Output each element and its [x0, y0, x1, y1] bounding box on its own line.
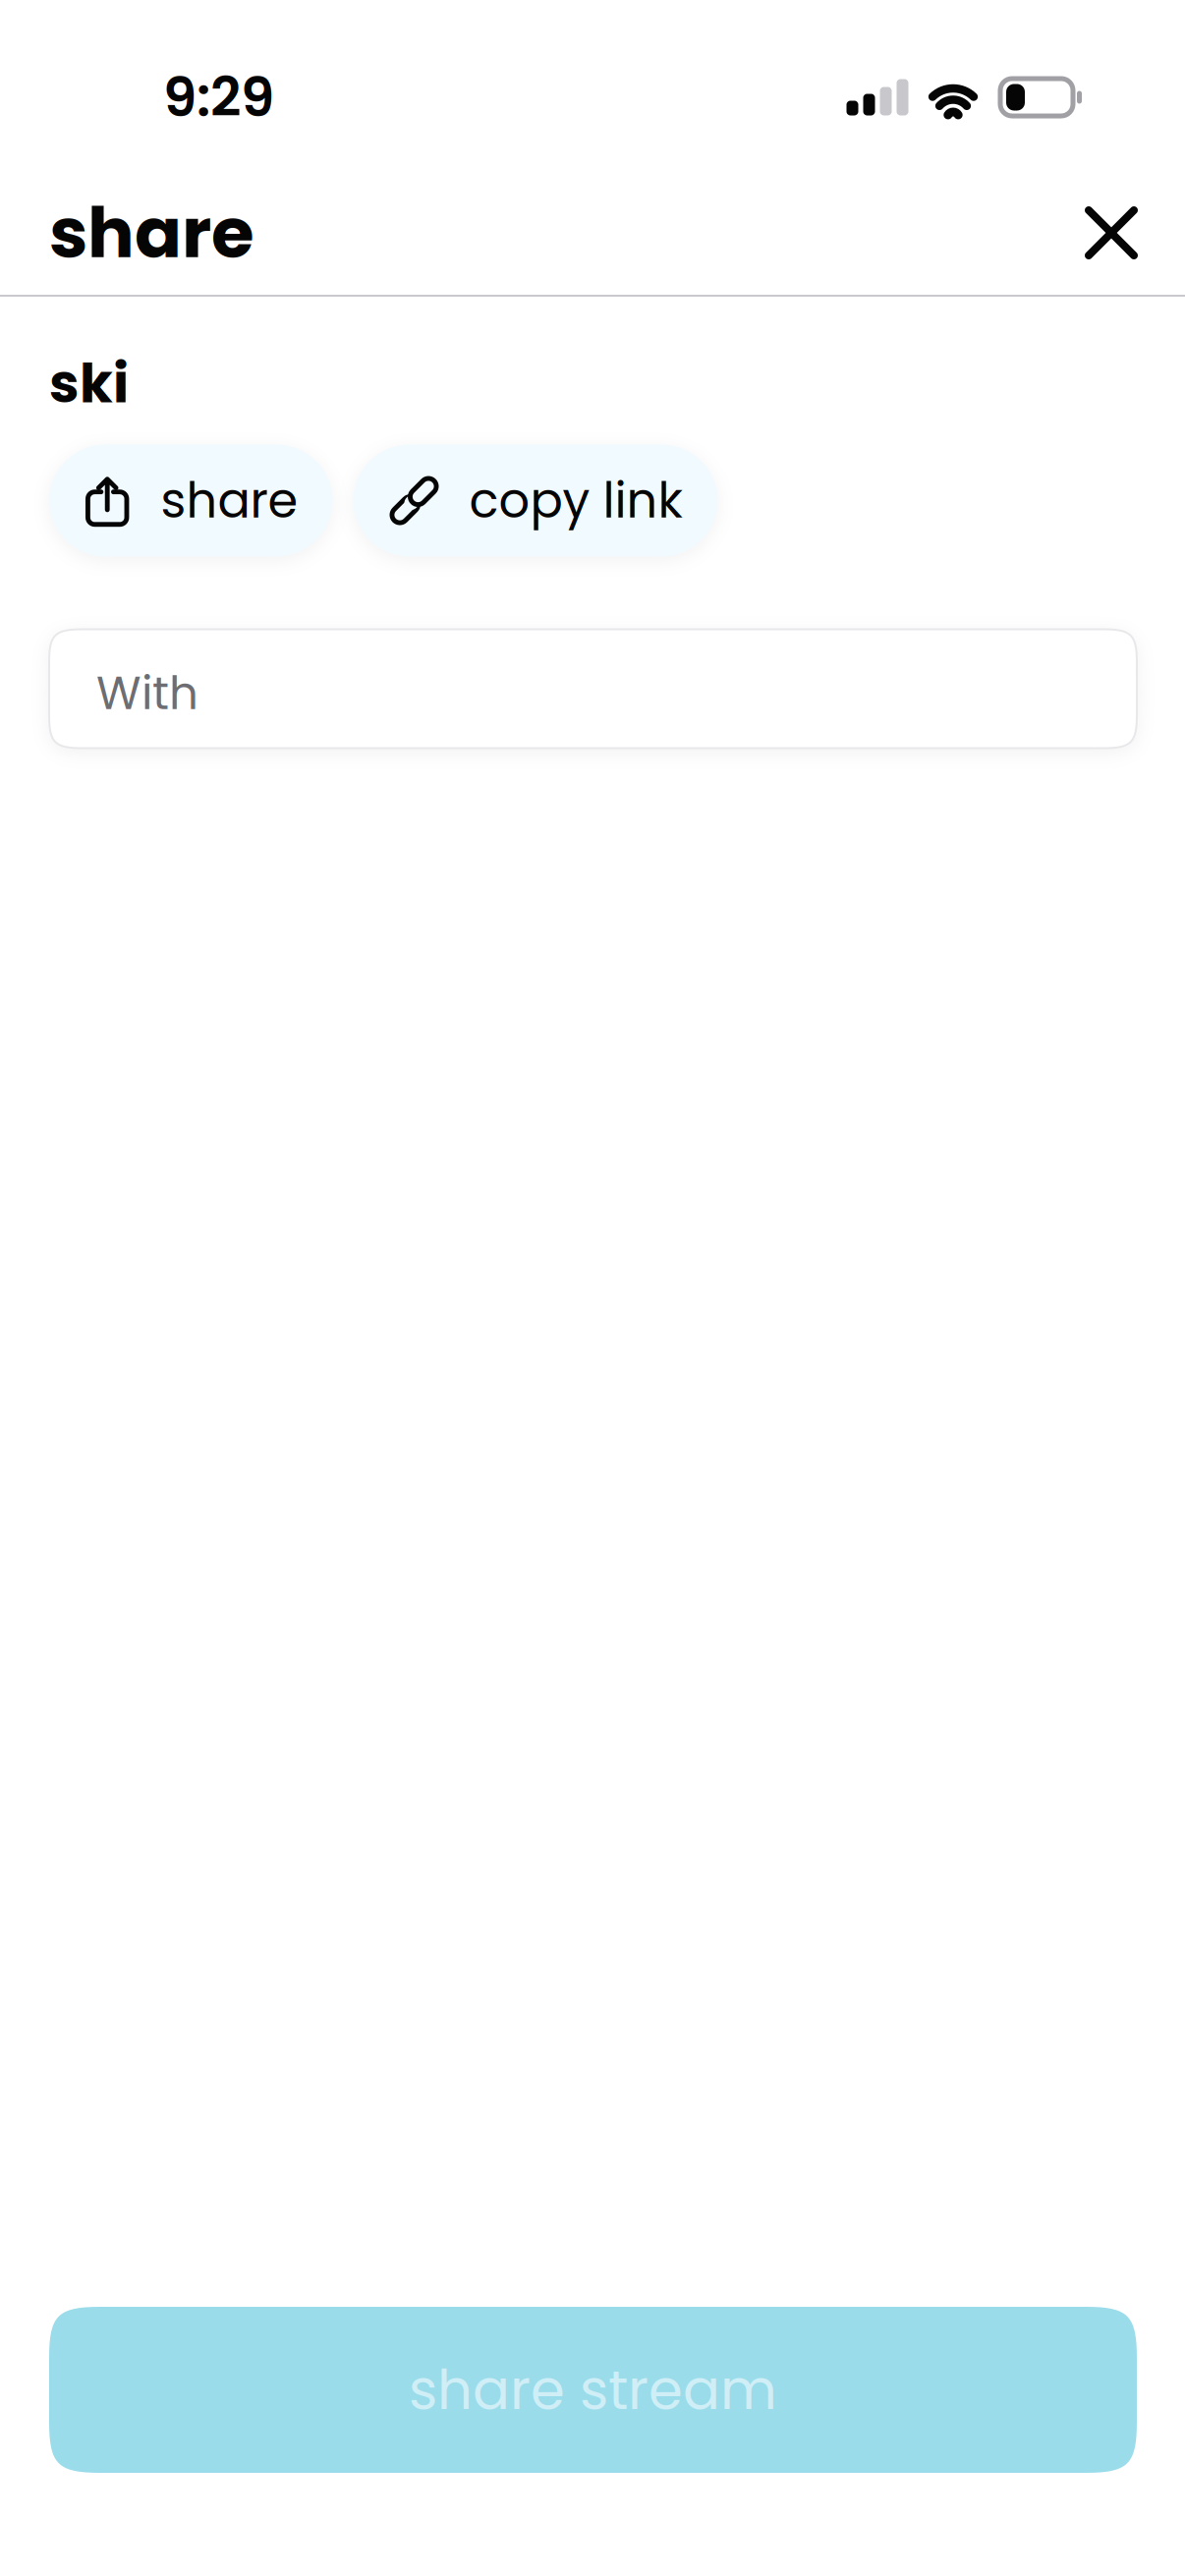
- button[interactable]: Close: [1067, 189, 1156, 277]
- button[interactable]: copy link: [353, 445, 718, 557]
- staticText: 9:29: [163, 60, 274, 135]
- staticText: share stream: [409, 2351, 777, 2428]
- staticText: copy link: [469, 467, 682, 535]
- staticText: share: [49, 184, 254, 281]
- button[interactable]: share: [49, 445, 333, 557]
- button[interactable]: share stream: [49, 2307, 1137, 2473]
- staticText: With: [96, 661, 198, 725]
- staticText: ski: [49, 346, 129, 421]
- staticText: share: [161, 467, 298, 535]
